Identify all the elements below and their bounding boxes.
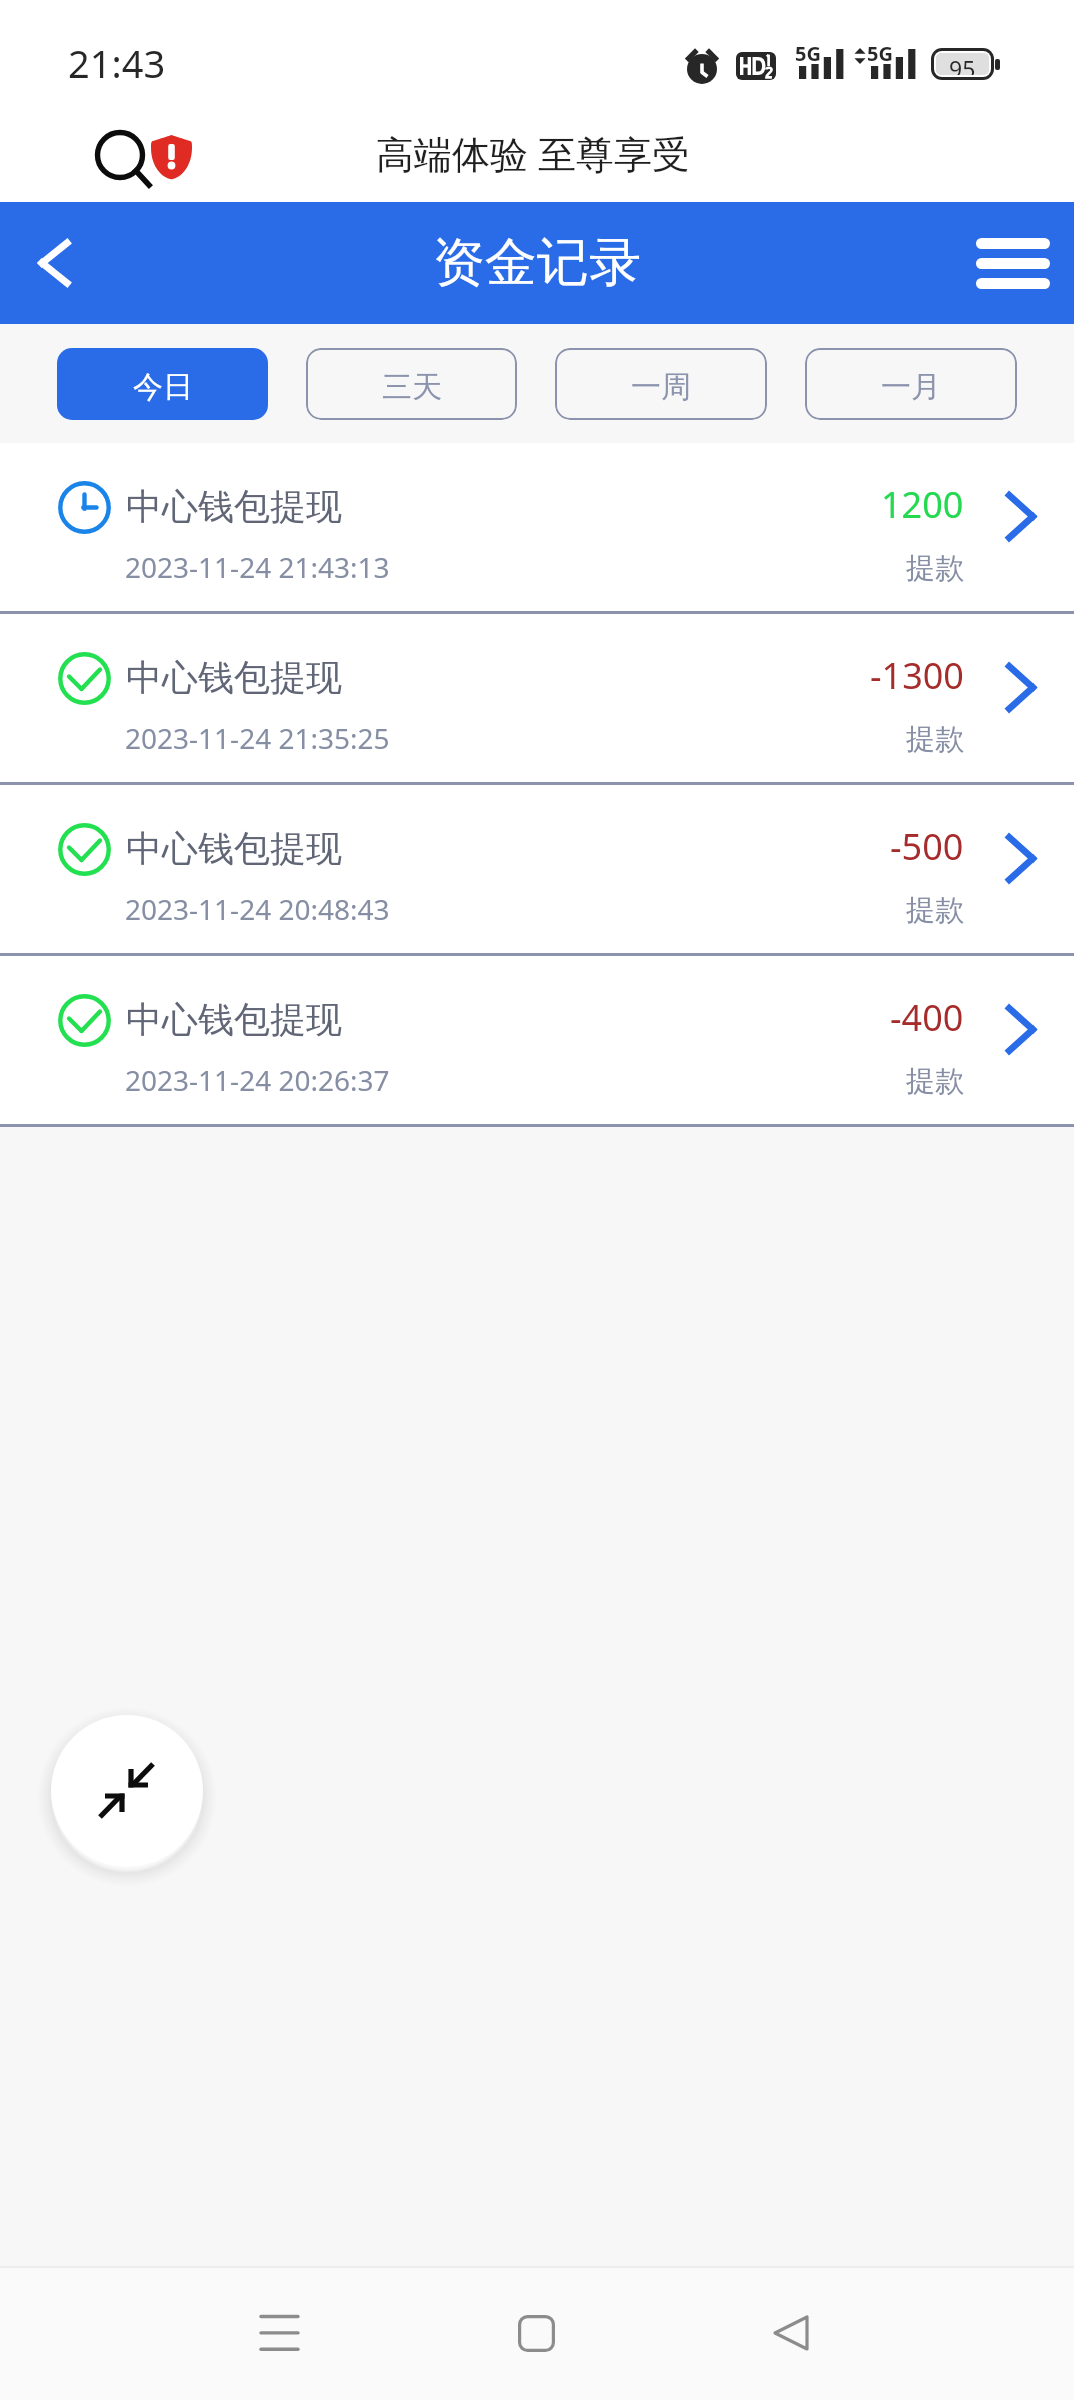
button[interactable]: Home: [476, 2273, 596, 2393]
staticText: 今日: [133, 368, 193, 406]
staticText: 三天: [382, 368, 442, 406]
button[interactable]: 中心钱包提现: [0, 785, 1074, 953]
staticText: -1300: [870, 651, 964, 700]
staticText: 提款: [906, 892, 964, 929]
button[interactable]: Back: [14, 223, 94, 303]
staticText: 2023-11-24 20:48:43: [125, 890, 390, 928]
staticText: -500: [890, 822, 964, 871]
button[interactable]: Collapse: [51, 1715, 203, 1867]
staticText: 5G: [795, 40, 821, 67]
staticText: 提款: [906, 550, 964, 587]
button[interactable]: Menu: [963, 213, 1063, 313]
staticText: 21:43: [68, 37, 166, 89]
button[interactable]: 一周: [555, 348, 767, 420]
staticText: 资金记录: [433, 230, 641, 296]
staticText: 一月: [881, 368, 941, 406]
staticText: 中心钱包提现: [126, 484, 342, 529]
button[interactable]: 中心钱包提现: [0, 956, 1074, 1124]
button[interactable]: 中心钱包提现: [0, 614, 1074, 782]
button[interactable]: Back: [731, 2273, 851, 2393]
staticText: 2023-11-24 21:35:25: [125, 719, 390, 757]
staticText: 提款: [906, 721, 964, 758]
staticText: 高端体验 至尊享受: [376, 127, 690, 179]
button[interactable]: 今日: [57, 348, 268, 420]
staticText: 中心钱包提现: [126, 655, 342, 700]
staticText: 中心钱包提现: [126, 826, 342, 871]
button[interactable]: 中心钱包提现: [0, 443, 1074, 611]
staticText: 5G: [867, 40, 893, 67]
button[interactable]: Recents: [219, 2273, 339, 2393]
staticText: 95: [949, 53, 976, 75]
button[interactable]: 一月: [805, 348, 1017, 420]
staticText: 2023-11-24 20:26:37: [125, 1061, 390, 1099]
button[interactable]: 三天: [306, 348, 517, 420]
staticText: 2023-11-24 21:43:13: [125, 548, 390, 586]
staticText: 一周: [631, 368, 691, 406]
staticText: 中心钱包提现: [126, 997, 342, 1042]
staticText: 提款: [906, 1063, 964, 1100]
staticText: -400: [890, 993, 964, 1042]
staticText: 1200: [881, 480, 964, 529]
